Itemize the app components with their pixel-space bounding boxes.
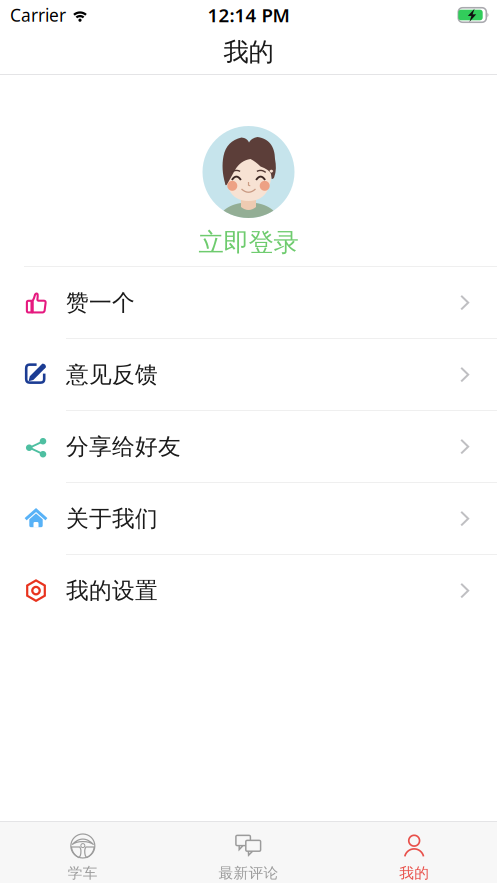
button[interactable]: 学车 bbox=[0, 822, 166, 883]
staticText: 赞一个 bbox=[66, 289, 135, 316]
button[interactable]: 意见反馈 bbox=[0, 339, 497, 410]
staticText: 意见反馈 bbox=[66, 361, 158, 388]
staticText: 分享给好友 bbox=[66, 433, 181, 460]
staticText: 我的设置 bbox=[66, 577, 158, 604]
button[interactable]: 赞一个 bbox=[0, 267, 497, 338]
staticText: 我的 bbox=[223, 36, 273, 67]
staticText: 学车 bbox=[68, 864, 98, 882]
staticText: Carrier bbox=[10, 3, 66, 26]
button[interactable]: 我的 bbox=[0, 30, 497, 74]
staticText: 立即登录 bbox=[198, 227, 298, 258]
button[interactable]: 最新评论 bbox=[166, 822, 331, 883]
staticText: 我的 bbox=[399, 864, 429, 882]
button[interactable]: 关于我们 bbox=[0, 483, 497, 554]
button[interactable]: 分享给好友 bbox=[0, 411, 497, 482]
staticText: 关于我们 bbox=[66, 505, 158, 532]
button[interactable]: 我的 bbox=[331, 822, 497, 883]
staticText: 12:14 PM bbox=[207, 3, 289, 27]
button[interactable]: 我的设置 bbox=[0, 555, 497, 626]
staticText: 最新评论 bbox=[218, 864, 278, 882]
